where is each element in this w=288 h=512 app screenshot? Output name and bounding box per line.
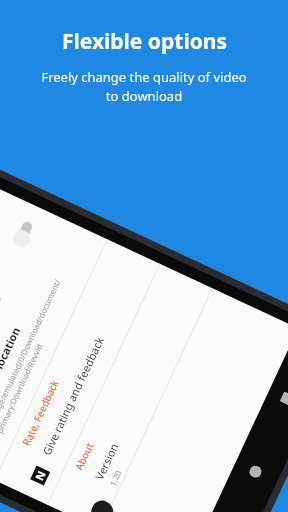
- staticText: Flexible options: [62, 27, 227, 56]
- staticText: About: [71, 440, 96, 472]
- staticText: /storage/emulated/0/Download/document/ p…: [0, 277, 73, 435]
- staticText: Give rating and feedback: [39, 334, 107, 458]
- staticText: Rate, Feedback: [19, 378, 62, 448]
- staticText: Version: [91, 440, 121, 482]
- button[interactable]: [47, 264, 212, 512]
- staticText: Freely change the quality of video to do…: [41, 68, 247, 105]
- staticText: N: [31, 468, 49, 483]
- button[interactable]: More: [88, 497, 117, 512]
- button[interactable]: Ask before download toggle: [10, 215, 38, 250]
- staticText: 1.20: [107, 468, 123, 487]
- staticText: App asks you to choose quality for each …: [0, 288, 4, 411]
- staticText: Download location: [0, 324, 23, 424]
- button[interactable]: [0, 188, 98, 476]
- button[interactable]: [0, 239, 159, 505]
